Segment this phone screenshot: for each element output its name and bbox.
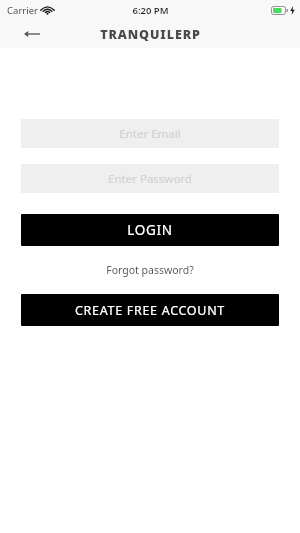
button[interactable]: CREATE FREE ACCOUNT — [21, 294, 279, 326]
staticText: Carrier — [7, 4, 38, 17]
button[interactable]: Enter Password — [21, 164, 279, 193]
staticText: Forgot password? — [106, 263, 194, 277]
staticText: Enter Email — [119, 126, 181, 142]
button[interactable]: Enter Email — [21, 119, 279, 148]
staticText: 6:20 PM — [132, 4, 169, 17]
staticText: TRANQUILERP — [100, 26, 201, 43]
button[interactable]: Forgot password? — [98, 260, 202, 280]
staticText: Enter Password — [108, 171, 192, 187]
button[interactable]: Back — [20, 23, 44, 45]
staticText: LOGIN — [127, 221, 173, 239]
button[interactable]: LOGIN — [21, 214, 279, 246]
staticText: CREATE FREE ACCOUNT — [75, 302, 225, 319]
